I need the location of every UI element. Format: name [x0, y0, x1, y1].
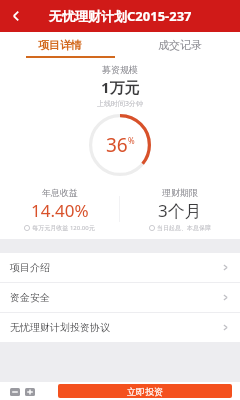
staticText: 募资规模 — [102, 64, 138, 75]
button[interactable]: Customer service — [8, 385, 21, 398]
button[interactable]: 无忧理财计划投资协议 — [0, 313, 240, 342]
staticText: 年息收益 — [42, 187, 78, 198]
button[interactable]: 成交记录 — [120, 32, 240, 58]
button[interactable]: 项目介绍 — [0, 253, 240, 282]
staticText: 成交记录 — [158, 38, 202, 52]
staticText: 每万元月收益 120.00元 — [32, 224, 95, 232]
staticText: 项目介绍 — [10, 261, 50, 274]
staticText: 项目详情 — [38, 38, 82, 52]
staticText: 14.40% — [31, 199, 89, 222]
button[interactable]: 资金安全 — [0, 283, 240, 312]
staticText: 无忧理财计划C2015-237 — [49, 7, 192, 25]
staticText: 理财期限 — [162, 187, 198, 198]
staticText: 立即投资 — [127, 386, 163, 397]
staticText: 资金安全 — [10, 291, 50, 304]
staticText: 3个月 — [158, 199, 202, 222]
staticText: 当日起息、本息保障 — [157, 224, 211, 232]
staticText: 1万元 — [101, 77, 140, 97]
staticText: 36 — [106, 132, 128, 158]
button[interactable]: 立即投资 — [58, 384, 232, 398]
button[interactable]: Back — [0, 0, 32, 32]
staticText: 上线时间3分钟 — [97, 99, 144, 109]
button[interactable]: 项目详情 — [0, 32, 120, 58]
button[interactable]: Add to favourites — [23, 385, 36, 398]
staticText: 无忧理财计划投资协议 — [10, 321, 110, 334]
staticText: % — [128, 135, 135, 146]
